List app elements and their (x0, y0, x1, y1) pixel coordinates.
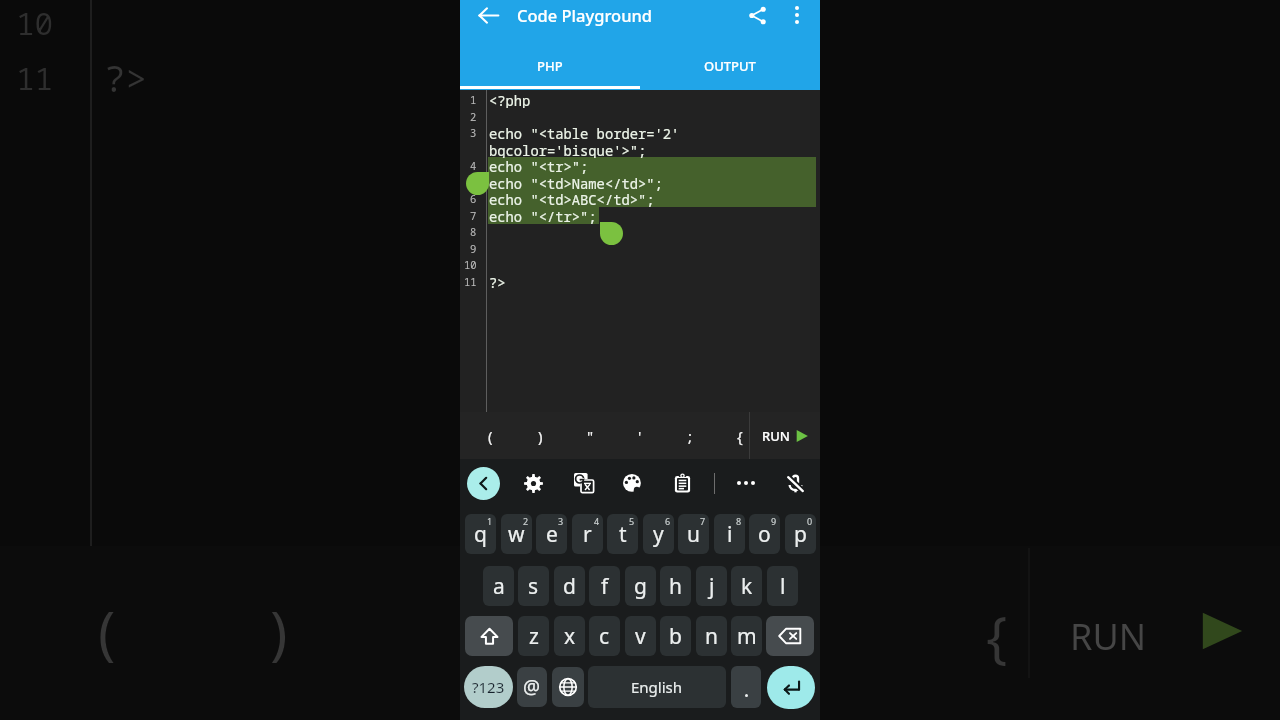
staticText: 8 (470, 225, 477, 239)
staticText: Code Playground (517, 4, 653, 26)
button[interactable]: r (572, 514, 603, 554)
button[interactable]: j (696, 566, 727, 606)
staticText: 2 (470, 110, 477, 124)
staticText: 6 (665, 515, 671, 527)
staticText: e (546, 520, 558, 549)
staticText: " (587, 426, 594, 446)
staticText: 11 (464, 275, 477, 289)
staticText: a (493, 572, 505, 601)
staticText: ; (688, 426, 693, 446)
staticText: 2 (523, 515, 529, 527)
button[interactable]: u (678, 514, 709, 554)
button[interactable]: z (518, 616, 549, 656)
staticText: 8 (736, 515, 742, 527)
staticText: ?> (489, 273, 506, 290)
staticText: 0 (807, 515, 813, 527)
button[interactable]: " (565, 412, 615, 459)
staticText: x (564, 622, 576, 651)
button[interactable]: Theme (616, 467, 648, 499)
staticText: 4 (470, 159, 477, 173)
button[interactable]: ; (665, 412, 715, 459)
button[interactable]: w (501, 514, 532, 554)
staticText: g (634, 572, 647, 601)
button[interactable]: q (465, 514, 496, 554)
button[interactable]: At sign (517, 667, 547, 707)
staticText: English (631, 677, 683, 697)
staticText: i (727, 520, 733, 549)
button[interactable]: d (554, 566, 585, 606)
button[interactable]: { (715, 412, 765, 459)
button[interactable]: Share (736, 0, 778, 36)
staticText: ) (538, 426, 543, 446)
staticText: o (758, 520, 771, 549)
button[interactable]: f (589, 566, 620, 606)
button[interactable]: More (730, 467, 762, 499)
staticText: 1 (487, 515, 493, 527)
button[interactable]: c (589, 616, 620, 656)
button[interactable]: a (483, 566, 514, 606)
button[interactable]: ) (515, 412, 565, 459)
button[interactable]: l (767, 566, 798, 606)
staticText: c (599, 622, 610, 651)
button[interactable]: ' (615, 412, 665, 459)
button[interactable]: Translate (568, 467, 600, 499)
button[interactable]: ( (465, 412, 515, 459)
button[interactable]: t (607, 514, 638, 554)
staticText: { (737, 426, 743, 446)
button[interactable]: x (554, 616, 585, 656)
button[interactable]: RUN (750, 412, 820, 459)
button[interactable]: Backspace (766, 616, 814, 656)
button[interactable]: Shift (465, 616, 513, 656)
staticText: 5 (629, 515, 635, 527)
staticText: z (529, 622, 539, 651)
staticText: echo "<tr>"; (489, 157, 589, 174)
staticText: OUTPUT (704, 57, 756, 75)
staticText: q (474, 520, 487, 549)
button[interactable]: Period (731, 666, 761, 708)
staticText: d (563, 572, 576, 601)
staticText: t (619, 520, 627, 549)
button[interactable]: g (625, 566, 656, 606)
button[interactable]: More options (780, 0, 814, 32)
button[interactable]: n (696, 616, 727, 656)
button[interactable]: m (731, 616, 762, 656)
button[interactable]: o (749, 514, 780, 554)
button[interactable]: i (714, 514, 745, 554)
button[interactable]: Mic off (779, 467, 811, 499)
button[interactable]: b (660, 616, 691, 656)
button[interactable]: Collapse toolbar (467, 467, 500, 500)
button[interactable]: PHP (460, 46, 640, 86)
button[interactable]: OUTPUT (640, 46, 820, 86)
staticText: w (508, 520, 525, 549)
staticText: 9 (470, 242, 477, 256)
button[interactable]: Language (552, 667, 584, 707)
button[interactable]: p (785, 514, 816, 554)
button[interactable]: v (625, 616, 656, 656)
staticText: echo "</tr>"; (489, 207, 597, 224)
staticText: f (601, 572, 609, 601)
button[interactable]: Enter (767, 666, 815, 709)
staticText: ( (98, 592, 116, 671)
button[interactable]: h (660, 566, 691, 606)
staticText: 6 (470, 192, 477, 206)
button[interactable]: English (588, 666, 726, 708)
staticText: b (669, 622, 682, 651)
button[interactable]: Clipboard (666, 467, 698, 499)
staticText: 10 (16, 2, 54, 44)
staticText: l (780, 572, 786, 601)
button[interactable]: Settings (517, 467, 549, 499)
staticText: y (653, 520, 664, 549)
staticText: echo "<td>Name</td>"; (489, 174, 663, 191)
button[interactable]: Back (469, 0, 507, 34)
button[interactable]: s (518, 566, 549, 606)
button[interactable]: e (536, 514, 567, 554)
staticText: v (635, 622, 646, 651)
staticText: @ (523, 674, 541, 700)
button[interactable]: k (731, 566, 762, 606)
staticText: p (794, 520, 807, 549)
staticText: ) (270, 592, 288, 671)
button[interactable]: y (643, 514, 674, 554)
button[interactable]: ?123 (464, 666, 513, 708)
